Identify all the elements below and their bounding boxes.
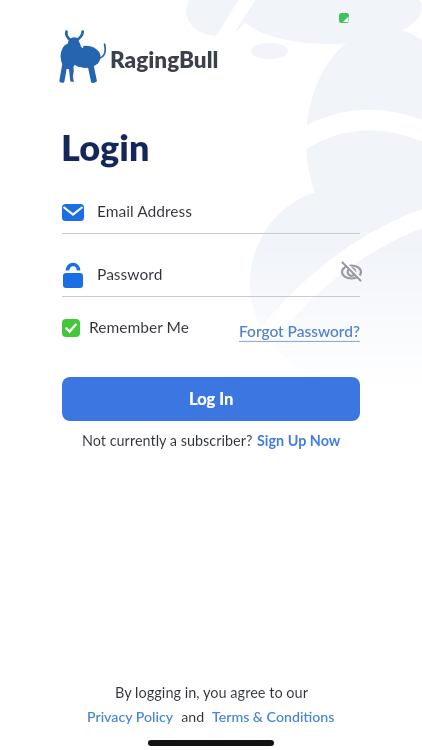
- staticText: Remember Me: [89, 318, 189, 337]
- button[interactable]: Terms & Conditions: [212, 708, 335, 725]
- staticText: Log In: [189, 389, 234, 409]
- staticText: RagingBull: [110, 46, 219, 73]
- staticText: By logging in, you agree to our: [115, 684, 308, 701]
- staticText: Password: [97, 265, 163, 284]
- staticText: Email Address: [97, 202, 193, 221]
- staticText: Not currently a subscriber?: [82, 432, 257, 449]
- button[interactable]: Log In: [62, 377, 360, 421]
- button[interactable]: Email Address: [62, 192, 360, 234]
- button[interactable]: Password: [62, 255, 360, 297]
- button[interactable]: Sign Up Now: [257, 432, 341, 449]
- button[interactable]: Forgot Password?: [239, 322, 360, 341]
- staticText: Login: [61, 125, 150, 168]
- button[interactable]: [336, 258, 366, 286]
- staticText: and: [174, 708, 212, 725]
- button[interactable]: Privacy Policy: [87, 708, 174, 725]
- button[interactable]: Remember Me: [62, 318, 189, 337]
